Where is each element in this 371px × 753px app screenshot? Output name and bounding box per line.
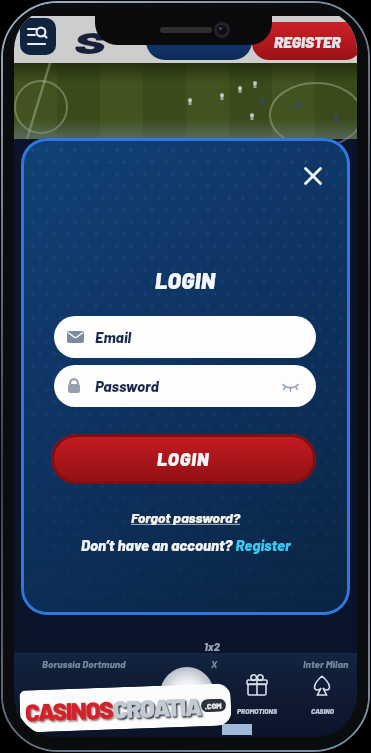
staticText: Password (95, 377, 159, 395)
button[interactable]: CASINO (300, 674, 344, 726)
staticText: PROMOTIONS (237, 707, 278, 715)
staticText: .COM (205, 701, 222, 710)
staticText: CASINOS (25, 694, 114, 726)
button[interactable]: Email (54, 316, 316, 358)
staticText: LOGIN (155, 267, 216, 293)
button[interactable]: PROMOTIONS (232, 674, 282, 726)
staticText: LOGIN (157, 448, 210, 470)
staticText: S (74, 24, 106, 54)
staticText: 1x2 (204, 640, 220, 653)
button[interactable]: REGISTER (252, 22, 357, 60)
staticText: Borussia Dortmund (42, 658, 126, 670)
button[interactable]: LOGIN (51, 434, 316, 484)
staticText: Inter Milan (303, 658, 349, 670)
staticText: CROATIA (112, 691, 201, 723)
staticText: X (211, 658, 218, 670)
button[interactable]: Don’t have an account? Register (81, 536, 291, 554)
button[interactable] (20, 18, 56, 55)
button[interactable] (299, 162, 327, 190)
button[interactable]: Forgot password? (131, 509, 241, 526)
staticText: Email (95, 328, 132, 346)
staticText: CASINO (311, 707, 334, 715)
button[interactable] (160, 667, 214, 721)
button[interactable] (146, 22, 252, 60)
button[interactable]: Password (54, 365, 316, 407)
staticText: REGISTER (274, 32, 341, 51)
